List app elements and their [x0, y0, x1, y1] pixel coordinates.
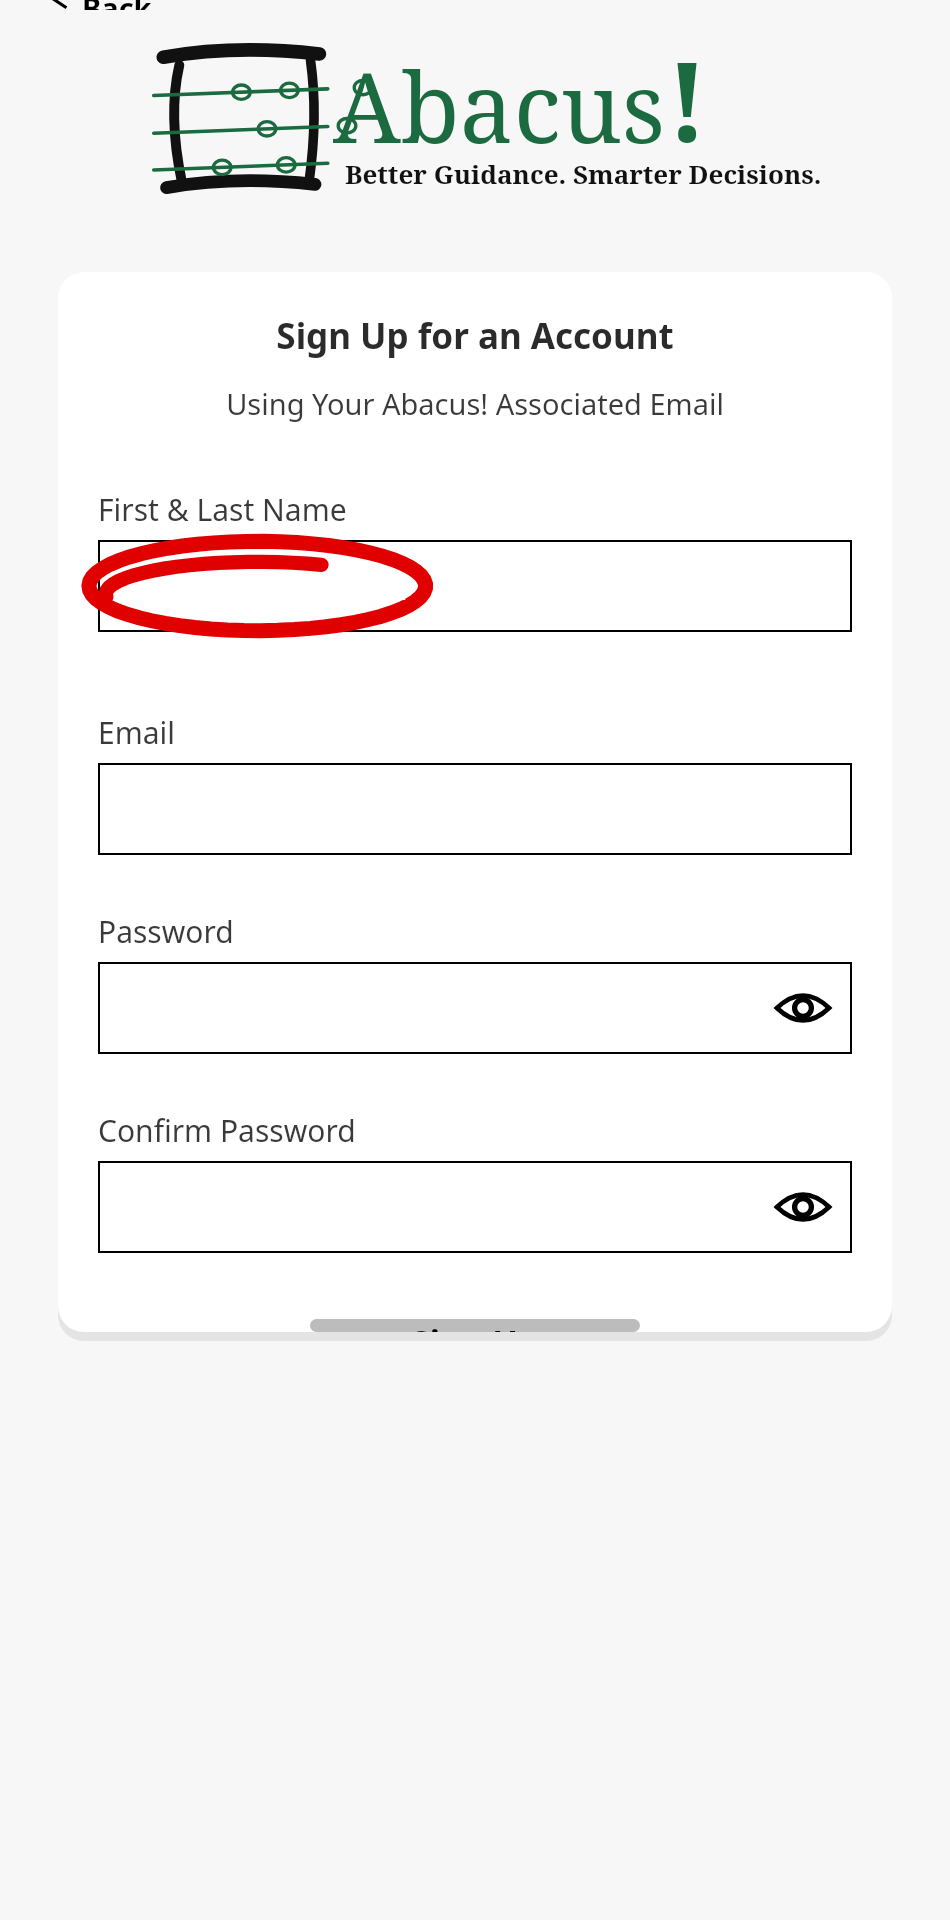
staticText: ! [666, 24, 709, 174]
staticText: Using Your Abacus! Associated Email [58, 384, 892, 423]
staticText: Abacus [333, 40, 666, 171]
staticText: First & Last Name [98, 489, 347, 530]
staticText: Email [98, 712, 176, 753]
staticText: Back [82, 0, 152, 10]
staticText: Sign Up [411, 1319, 540, 1332]
button[interactable]: Show password [772, 984, 834, 1032]
button[interactable]: Sign Up [310, 1319, 640, 1332]
button[interactable]: Show password [98, 962, 852, 1054]
button[interactable] [98, 540, 852, 632]
staticText: Sign Up for an Account [58, 312, 892, 360]
button[interactable]: Show password [772, 1183, 834, 1231]
button[interactable] [98, 763, 852, 855]
staticText: Password [98, 911, 234, 952]
staticText: Confirm Password [98, 1110, 356, 1151]
button[interactable]: Back [40, 0, 160, 14]
button[interactable]: Show password [98, 1161, 852, 1253]
staticText: Better Guidance. Smarter Decisions. [345, 156, 822, 191]
